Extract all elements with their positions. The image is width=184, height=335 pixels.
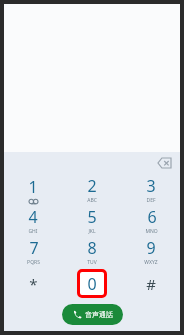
staticText: MNO xyxy=(145,228,158,235)
button[interactable]: 音声通話 xyxy=(62,304,123,325)
button[interactable]: 2 xyxy=(62,174,121,205)
staticText: * xyxy=(29,274,38,294)
button[interactable]: * xyxy=(4,269,62,298)
button[interactable]: 5 xyxy=(62,205,121,236)
button[interactable]: 3 xyxy=(121,174,180,205)
staticText: 4 xyxy=(28,206,38,228)
button[interactable]: 4 xyxy=(4,205,62,236)
staticText: 6 xyxy=(147,206,157,228)
staticText: TUV xyxy=(87,259,97,266)
staticText: # xyxy=(146,274,156,294)
button[interactable]: 1 xyxy=(4,174,62,205)
button[interactable]: 9 xyxy=(121,236,180,267)
staticText: WXYZ xyxy=(144,259,158,266)
staticText: 1 xyxy=(28,176,38,198)
staticText: DEF xyxy=(146,197,156,204)
staticText: PQRS xyxy=(27,259,40,266)
staticText: 2 xyxy=(87,175,97,197)
staticText: 8 xyxy=(87,237,97,259)
staticText: 0 xyxy=(87,273,97,295)
staticText: 音声通話 xyxy=(85,310,113,319)
button[interactable]: Backspace xyxy=(154,153,174,173)
button[interactable]: 6 xyxy=(121,205,180,236)
staticText: 9 xyxy=(146,237,156,259)
button[interactable]: 7 xyxy=(4,236,62,267)
button[interactable]: 8 xyxy=(62,236,121,267)
button[interactable]: 0 xyxy=(62,269,121,298)
button[interactable]: # xyxy=(121,269,180,298)
staticText: 7 xyxy=(29,237,39,259)
staticText: ABC xyxy=(87,197,97,204)
staticText: JKL xyxy=(88,228,96,235)
staticText: 5 xyxy=(87,206,97,228)
staticText: 3 xyxy=(146,175,156,197)
staticText: GHI xyxy=(28,228,38,235)
